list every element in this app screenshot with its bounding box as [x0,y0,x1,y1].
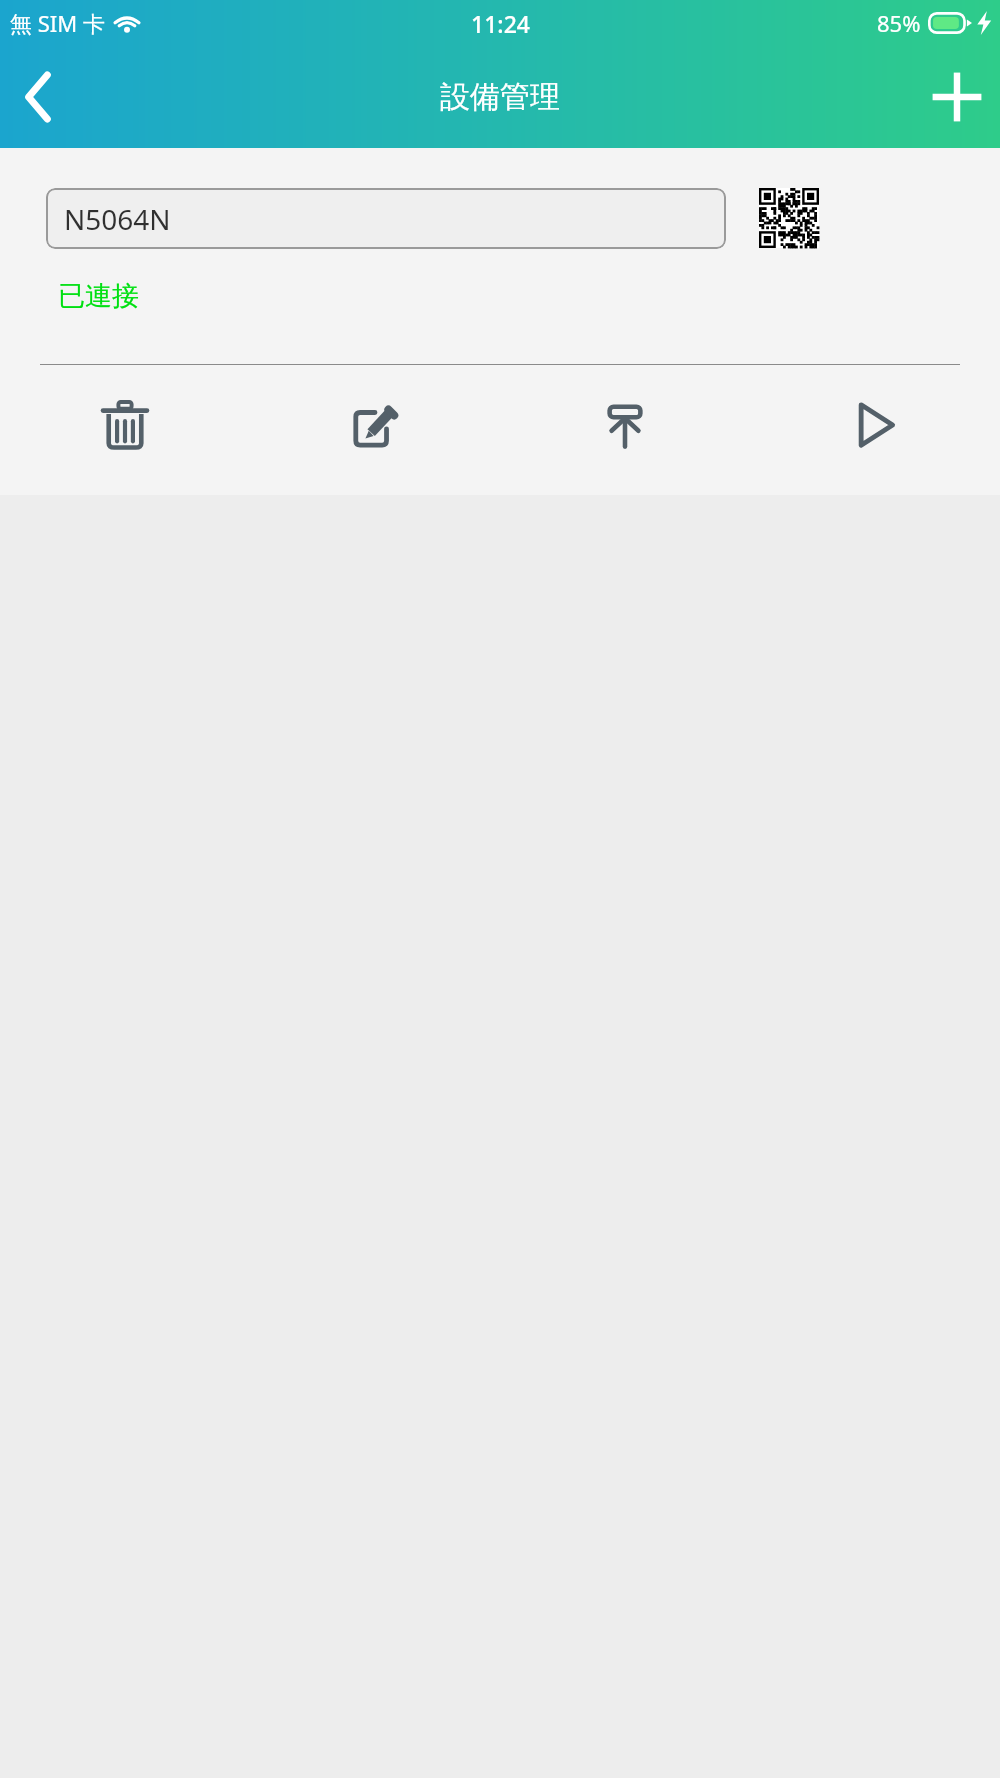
staticText: 設備管理 [440,78,560,116]
staticText: 無 SIM 卡 [10,8,105,38]
button[interactable]: Edit [250,365,500,485]
staticText: 已連接 [58,279,139,313]
button[interactable]: Play [750,365,1000,485]
staticText: 11:24 [471,8,530,39]
button[interactable]: QR code [758,187,820,249]
staticText: 85% [877,8,921,38]
button[interactable]: N5064N [46,188,726,249]
button[interactable]: Back [0,58,78,136]
button[interactable]: Add device [914,54,1000,140]
staticText: N5064N [64,200,171,238]
button[interactable]: Delete [0,365,250,485]
button[interactable]: Upload [500,365,750,485]
